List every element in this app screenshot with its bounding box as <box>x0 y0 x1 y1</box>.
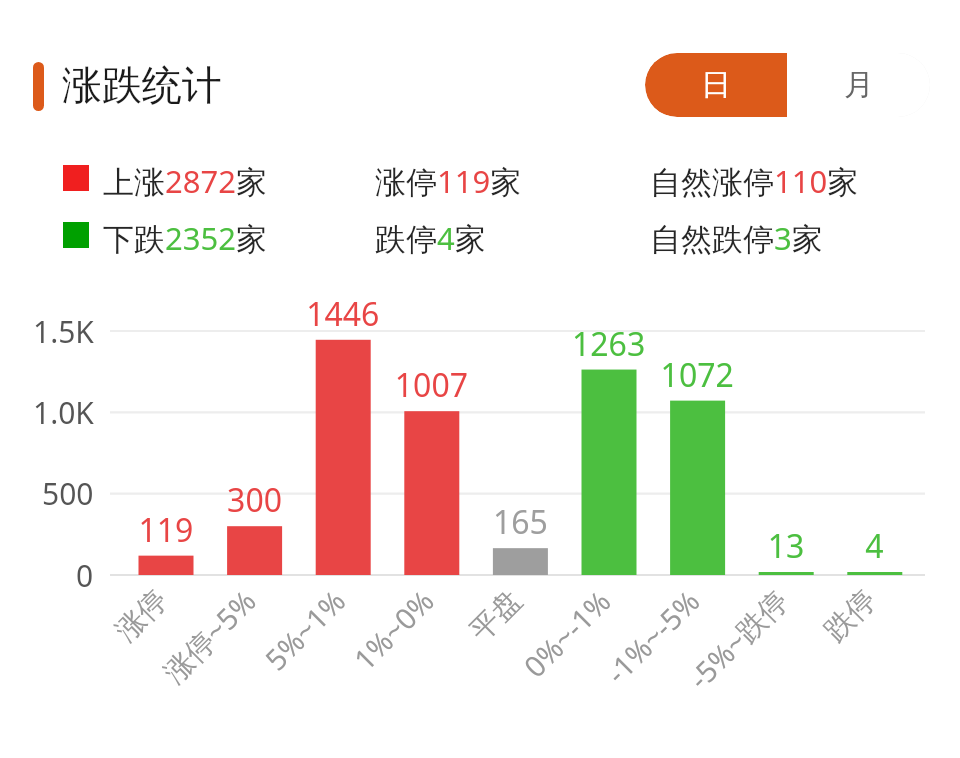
staticText: 上涨2872家 <box>103 160 267 202</box>
other: 涨跌分布柱状图 <box>0 0 960 758</box>
staticText: 日 <box>701 66 731 104</box>
button[interactable]: 月 <box>787 53 930 117</box>
staticText: 下跌2352家 <box>103 217 267 259</box>
button[interactable]: 日 <box>645 53 787 117</box>
staticText: 涨跌统计 <box>62 60 222 110</box>
staticText: 跌停4家 <box>375 217 486 259</box>
staticText: 月 <box>844 66 874 104</box>
staticText: 自然涨停110家 <box>650 160 859 202</box>
staticText: 自然跌停3家 <box>650 217 823 259</box>
staticText: 涨停119家 <box>375 160 522 202</box>
